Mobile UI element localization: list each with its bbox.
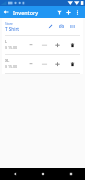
button[interactable]: Decrease [40, 55, 49, 73]
staticText: Inventory [13, 9, 39, 16]
button[interactable]: Back [0, 168, 29, 180]
button[interactable]: Photo [56, 18, 66, 35]
button[interactable]: Home [29, 168, 57, 180]
staticText: $ 15.00 [5, 64, 18, 69]
staticText: XL [5, 58, 10, 63]
button[interactable]: Edit [45, 18, 55, 35]
button[interactable]: Delete [68, 36, 77, 54]
button[interactable]: Recents [57, 168, 85, 180]
button[interactable]: Increase [53, 36, 62, 54]
button[interactable]: More options [72, 6, 82, 18]
staticText: T Shirt [5, 26, 20, 32]
staticText: L [5, 39, 8, 44]
staticText: Store [5, 22, 13, 26]
button[interactable]: Add [63, 6, 73, 18]
button[interactable]: Increase [53, 55, 62, 73]
button[interactable]: Back [1, 6, 11, 18]
button[interactable]: Filter [54, 6, 64, 18]
button[interactable]: Barcode [67, 18, 77, 35]
button[interactable]: Delete [68, 55, 77, 73]
staticText: $ 15.00 [5, 45, 18, 50]
button[interactable]: Decrease [40, 36, 49, 54]
